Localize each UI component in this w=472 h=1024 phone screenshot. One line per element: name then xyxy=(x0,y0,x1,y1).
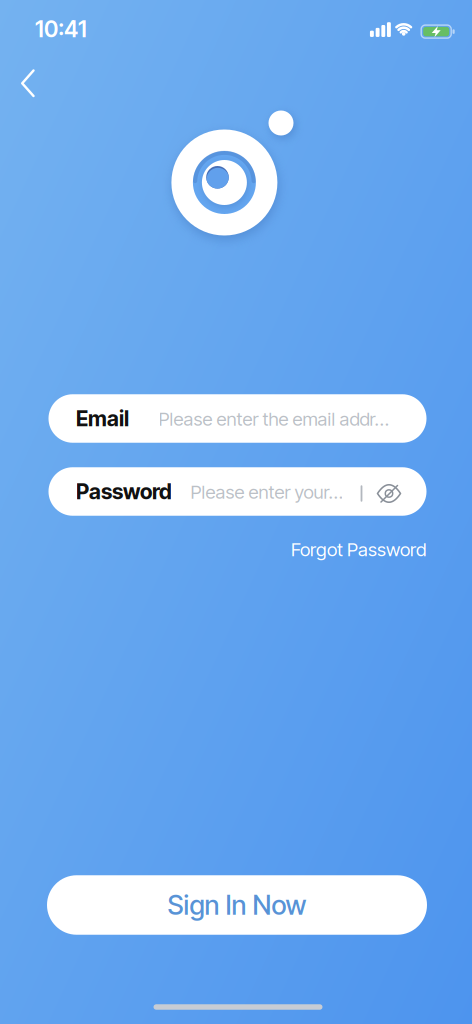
button[interactable]: Forgot Password xyxy=(206,538,426,560)
staticText: Please enter the email addr… xyxy=(159,408,389,430)
button[interactable]: Sign In Now xyxy=(47,875,427,935)
button[interactable]: Back xyxy=(6,61,50,105)
staticText: Sign In Now xyxy=(167,889,306,921)
staticText: Password xyxy=(76,479,172,504)
button[interactable]: Show password xyxy=(369,473,409,513)
staticText: 10:41 xyxy=(35,16,87,42)
staticText: Please enter your… xyxy=(190,481,342,503)
staticText: Email xyxy=(76,406,129,431)
staticText: Forgot Password xyxy=(291,538,426,560)
